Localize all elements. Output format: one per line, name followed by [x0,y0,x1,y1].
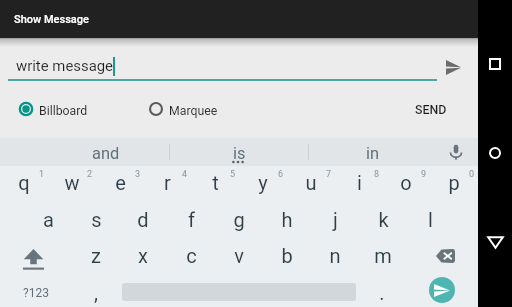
button[interactable]: c [167,238,215,273]
staticText: SEND [415,102,447,117]
button[interactable]: in [341,139,405,167]
button[interactable]: Enter [429,277,455,303]
button[interactable]: o [382,165,430,200]
staticText: s [91,208,102,231]
staticText: 4 [182,169,188,180]
button[interactable]: is [207,139,271,167]
staticText: a [43,208,54,231]
staticText: 2 [87,169,93,180]
button[interactable]: z [72,238,120,273]
button[interactable]: Backspace [428,239,462,273]
button[interactable]: Shift [16,242,50,276]
staticText: 5 [230,169,236,180]
staticText: h [281,208,293,231]
staticText: r [164,171,171,194]
staticText: b [281,244,293,267]
button[interactable]: y [239,165,287,200]
staticText: z [91,244,101,267]
staticText: ?123 [23,286,49,300]
button[interactable]: Back [487,236,504,249]
staticText: l [428,208,433,231]
staticText: u [305,171,317,194]
button[interactable]: Billboard [18,97,88,125]
button[interactable]: a [24,202,72,237]
button[interactable]: w [48,165,96,200]
staticText: j [333,208,338,231]
staticText: x [138,244,148,267]
staticText: 0 [469,169,475,180]
staticText: 8 [374,169,380,180]
staticText: 6 [278,169,284,180]
button[interactable]: and [74,139,138,167]
staticText: is [233,144,246,163]
staticText: 9 [421,169,427,180]
button[interactable]: n [311,238,359,273]
staticText: k [378,208,389,231]
button[interactable]: g [215,202,263,237]
button[interactable]: ?123 [12,279,60,307]
staticText: n [329,244,341,267]
staticText: m [374,244,392,267]
button[interactable]: v [215,238,263,273]
button[interactable]: u [287,165,335,200]
button[interactable]: k [359,202,407,237]
button[interactable]: h [263,202,311,237]
button[interactable]: , [72,275,120,307]
staticText: q [18,171,30,194]
staticText: Show Message [14,13,89,26]
button[interactable]: l [406,202,454,237]
staticText: and [92,144,120,163]
staticText: g [233,208,245,231]
button[interactable]: Marquee [148,97,218,125]
button[interactable]: s [72,202,120,237]
staticText: write message [16,57,113,74]
staticText: i [357,171,362,194]
button[interactable]: e [96,165,144,200]
staticText: Billboard [39,104,88,118]
staticText: p [448,171,460,194]
button[interactable]: p [430,165,478,200]
staticText: c [186,244,197,267]
staticText: t [212,171,219,194]
staticText: 7 [326,169,332,180]
staticText: in [366,144,380,163]
button[interactable]: m [359,238,407,273]
staticText: d [137,208,149,231]
button[interactable]: b [263,238,311,273]
button[interactable]: f [167,202,215,237]
button[interactable]: t [191,165,239,200]
button[interactable]: . [358,275,406,307]
button[interactable]: Voice input [447,143,465,161]
staticText: , [94,281,98,304]
staticText: . [379,281,385,304]
staticText: e [115,171,126,194]
button[interactable]: Home [489,147,501,159]
button[interactable]: j [311,202,359,237]
staticText: w [64,171,80,194]
button[interactable]: Recent apps [489,58,501,70]
staticText: Marquee [169,104,218,118]
staticText: f [188,208,195,231]
button[interactable]: d [119,202,167,237]
staticText: 3 [135,169,141,180]
staticText: y [258,171,268,194]
staticText: 1 [39,169,45,180]
button[interactable]: SEND [405,97,457,121]
button[interactable]: i [335,165,383,200]
button[interactable]: x [119,238,167,273]
staticText: o [400,171,412,194]
button[interactable]: Send message [436,50,470,84]
button[interactable]: r [143,165,191,200]
button[interactable]: q [0,165,48,200]
staticText: v [234,244,244,267]
